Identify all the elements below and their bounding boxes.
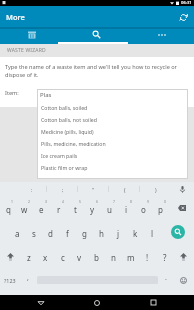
staticText: ( (124, 186, 126, 193)
button[interactable]: ) (140, 182, 171, 196)
staticText: l (151, 228, 154, 239)
staticText: Cotton balls, not soiled (41, 116, 97, 123)
staticText: 8 (130, 199, 132, 204)
button[interactable]: e (33, 196, 50, 220)
staticText: d (48, 228, 53, 239)
button[interactable]: Plastic film or wrap (37, 161, 188, 173)
staticText: t (74, 204, 77, 215)
staticText: j (117, 228, 120, 239)
button[interactable]: h (93, 220, 110, 244)
button[interactable]: " (78, 182, 109, 196)
button[interactable]: i (118, 196, 135, 220)
staticText: " (92, 186, 95, 193)
staticText: ?123 (4, 277, 16, 284)
staticText: r (57, 204, 61, 215)
button[interactable]: k (127, 220, 144, 244)
staticText: n (111, 252, 116, 263)
staticText: 1 (11, 199, 13, 204)
button[interactable]: m (122, 244, 139, 268)
button[interactable]: Shift (173, 244, 194, 268)
staticText: 0 (164, 199, 166, 204)
button[interactable]: f (59, 220, 76, 244)
button[interactable]: Back (26, 295, 56, 310)
button[interactable]: Home (82, 295, 112, 310)
button[interactable]: Search (161, 220, 194, 244)
staticText: p (158, 204, 163, 215)
button[interactable]: j (110, 220, 127, 244)
button[interactable]: d (42, 220, 59, 244)
staticText: f (66, 228, 69, 239)
staticText: w (21, 204, 28, 215)
button[interactable]: a (9, 220, 25, 244)
button[interactable]: u (101, 196, 118, 220)
staticText: 2 (28, 199, 30, 204)
staticText: 3 (45, 199, 47, 204)
button[interactable]: Space (36, 268, 159, 292)
button[interactable]: Emoji (173, 268, 194, 292)
staticText: q (6, 204, 11, 215)
button[interactable]: : (16, 182, 47, 196)
button[interactable]: Pills, medicine, medication (37, 137, 188, 149)
staticText: , (27, 273, 29, 283)
button[interactable]: Cotton balls, soiled (37, 101, 188, 113)
staticText: o (141, 204, 146, 215)
button[interactable]: Backspace (169, 196, 194, 220)
staticText: 5 (79, 199, 81, 204)
staticText: s (32, 228, 36, 239)
button[interactable]: ! (139, 244, 156, 268)
staticText: WASTE WIZARD (7, 47, 46, 54)
staticText: Plastic film or wrap (41, 164, 88, 171)
staticText: u (107, 204, 112, 215)
button[interactable]: q (0, 196, 16, 220)
button[interactable]: , (19, 268, 36, 292)
button[interactable]: Refresh (172, 6, 194, 28)
button[interactable]: ( (109, 182, 140, 196)
staticText: ! (146, 252, 149, 263)
button[interactable]: y (84, 196, 101, 220)
button[interactable]: r (50, 196, 67, 220)
button[interactable]: l (144, 220, 161, 244)
staticText: Cotton balls, soiled (41, 104, 88, 111)
staticText: 6 (96, 199, 98, 204)
button[interactable]: p (152, 196, 169, 220)
staticText: ; (62, 186, 64, 193)
staticText: z (27, 252, 31, 263)
button[interactable]: v (71, 244, 88, 268)
button[interactable]: ; (47, 182, 78, 196)
button[interactable]: n (105, 244, 122, 268)
staticText: Item: (5, 89, 19, 97)
staticText: Ice cream pails (41, 152, 78, 159)
button[interactable]: t (67, 196, 84, 220)
staticText: Type the name of a waste item and we'll … (5, 63, 189, 78)
staticText: 7 (113, 199, 115, 204)
button[interactable]: c (54, 244, 71, 268)
button[interactable]: b (88, 244, 105, 268)
button[interactable]: Voice input (171, 182, 194, 196)
button[interactable]: w (16, 196, 33, 220)
button[interactable]: s (25, 220, 42, 244)
button[interactable]: Cotton balls, not soiled (37, 113, 188, 125)
button[interactable]: Collections (0, 27, 64, 42)
button[interactable]: More options (129, 27, 194, 42)
staticText: v (77, 252, 82, 263)
staticText: Medicine (pills, liquid) (41, 128, 94, 135)
button[interactable]: . (159, 268, 173, 292)
staticText: k (133, 228, 138, 239)
button[interactable]: z (21, 244, 37, 268)
button[interactable]: Shift (0, 244, 21, 268)
button[interactable]: Medicine (pills, liquid) (37, 125, 188, 137)
staticText: 4 (62, 199, 64, 204)
button[interactable]: g (76, 220, 93, 244)
staticText: b (94, 252, 99, 263)
button[interactable]: ?123 (0, 268, 19, 292)
button[interactable]: Ice cream pails (37, 149, 188, 161)
button[interactable]: o (135, 196, 152, 220)
staticText: h (99, 228, 104, 239)
staticText: x (43, 252, 48, 263)
button[interactable]: Recent apps (138, 295, 168, 310)
button[interactable]: Search (64, 27, 129, 42)
staticText: e (39, 204, 44, 215)
button[interactable]: x (37, 244, 54, 268)
button[interactable]: ? (156, 244, 173, 268)
staticText: c (61, 252, 65, 263)
